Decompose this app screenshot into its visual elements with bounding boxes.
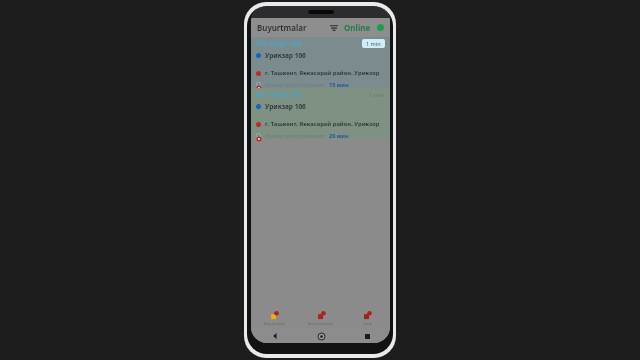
staticText: KFC-Magic City bbox=[256, 90, 302, 99]
staticText: 1 мин bbox=[369, 91, 385, 98]
staticText: 1 min bbox=[366, 40, 381, 47]
button[interactable]: Buyurtmalarim bbox=[298, 307, 344, 329]
staticText: 15 мин bbox=[329, 81, 349, 88]
staticText: Buyurtmalarim bbox=[308, 321, 334, 326]
button[interactable]: Filter bbox=[327, 21, 341, 35]
button[interactable]: KFC-Magic City bbox=[251, 37, 390, 88]
staticText: Урикзар 106 bbox=[265, 51, 306, 60]
staticText: Sozla bbox=[363, 321, 372, 326]
button[interactable]: Sozla bbox=[344, 307, 390, 329]
staticText: г. Ташкент, Яккасарай район, Урикзор 106 bbox=[265, 120, 385, 128]
staticText: Время приготовления: bbox=[265, 81, 327, 88]
button[interactable]: Recent apps bbox=[344, 329, 390, 343]
button[interactable]: Home bbox=[298, 329, 344, 343]
button[interactable]: KFC-Magic City bbox=[251, 88, 390, 139]
staticText: Время приготовления: bbox=[265, 132, 327, 139]
button[interactable]: Buyurtmalar bbox=[251, 307, 298, 329]
staticText: KFC-Magic City bbox=[256, 39, 302, 48]
staticText: Buyurtmalar bbox=[264, 321, 286, 326]
button[interactable]: Back bbox=[251, 329, 298, 343]
button[interactable]: Online bbox=[344, 22, 384, 33]
staticText: Online bbox=[344, 22, 371, 33]
staticText: 20 мин bbox=[329, 132, 349, 139]
staticText: г. Ташкент, Яккасарай район, Урикзор 106 bbox=[265, 69, 385, 77]
staticText: Buyurtmalar bbox=[257, 22, 307, 33]
staticText: Урикзар 106 bbox=[265, 102, 306, 111]
